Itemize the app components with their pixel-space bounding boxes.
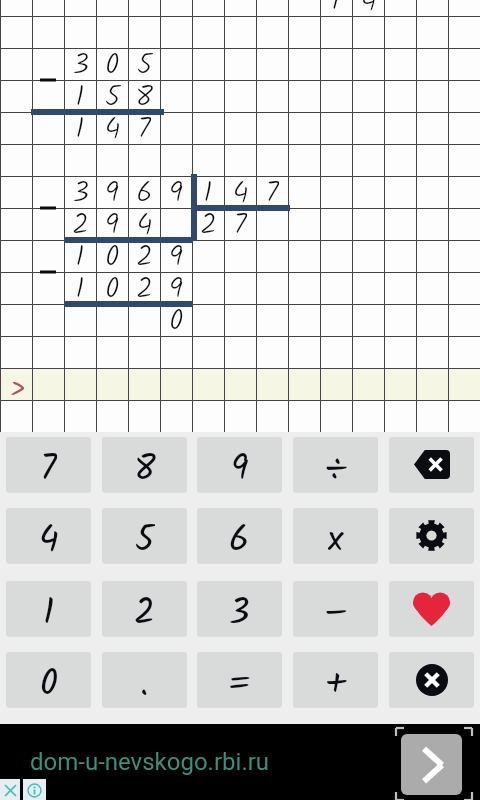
staticText: 7 <box>40 442 57 492</box>
button[interactable]: . <box>102 652 187 707</box>
staticText: 6 <box>229 513 250 563</box>
button[interactable]: Open advertisement <box>401 734 462 795</box>
staticText: . <box>140 657 149 707</box>
staticText: 4 <box>39 513 59 563</box>
button[interactable]: + <box>293 652 378 707</box>
button[interactable]: Advertisement info <box>23 779 46 800</box>
button[interactable]: 8 <box>102 437 187 492</box>
staticText: 7 <box>233 203 247 235</box>
staticText: 0 <box>105 235 120 267</box>
staticText: 4 <box>136 203 153 235</box>
staticText: 2 <box>200 203 217 235</box>
button[interactable]: 0 <box>6 652 91 707</box>
button[interactable]: 5 <box>102 508 187 563</box>
button[interactable]: Clear <box>389 652 474 707</box>
button[interactable]: dom-u-nevskogo.rbi.ru <box>0 724 480 800</box>
staticText: 1 <box>75 235 85 267</box>
button[interactable]: 2 <box>102 581 187 636</box>
button[interactable]: Favourite <box>389 581 474 636</box>
button[interactable]: 6 <box>197 508 282 563</box>
staticText: 2 <box>134 586 155 636</box>
staticText: 2 <box>136 235 153 267</box>
staticText: 1 <box>75 107 85 139</box>
staticText: 1 <box>331 0 341 11</box>
staticText: 5 <box>136 43 153 75</box>
staticText: 3 <box>72 171 89 203</box>
staticText: 8 <box>134 442 156 492</box>
staticText: ÷ <box>325 442 347 492</box>
staticText: 1 <box>75 75 85 107</box>
staticText: 3 <box>229 586 250 636</box>
staticText: x <box>328 513 344 563</box>
button[interactable]: Close ad <box>0 779 20 800</box>
staticText: − <box>325 586 347 636</box>
staticText: 5 <box>135 513 155 563</box>
staticText: 9 <box>105 171 119 203</box>
staticText: 0 <box>169 299 184 331</box>
staticText: = <box>228 657 251 707</box>
button[interactable]: x <box>293 508 378 563</box>
staticText: 2 <box>136 267 153 299</box>
staticText: 6 <box>136 171 153 203</box>
button[interactable]: Backspace <box>389 437 474 492</box>
button[interactable]: 4 <box>6 508 91 563</box>
button[interactable]: Settings <box>389 508 474 563</box>
button[interactable]: 7 <box>6 437 91 492</box>
button[interactable]: 3 <box>197 581 282 636</box>
staticText: 1 <box>75 267 85 299</box>
staticText: 1 <box>203 171 213 203</box>
button[interactable]: ÷ <box>293 437 378 492</box>
staticText: 4 <box>360 0 377 11</box>
staticText: + <box>325 657 347 707</box>
staticText: 3 <box>72 43 89 75</box>
staticText: 8 <box>135 75 153 107</box>
staticText: 7 <box>137 107 151 139</box>
staticText: dom-u-nevskogo.rbi.ru <box>30 748 270 776</box>
staticText: 9 <box>169 171 183 203</box>
staticText: 5 <box>104 75 121 107</box>
staticText: 0 <box>105 43 120 75</box>
staticText: 4 <box>232 171 249 203</box>
staticText: 9 <box>169 235 183 267</box>
staticText: 9 <box>231 442 249 492</box>
staticText: 2 <box>72 203 89 235</box>
button[interactable]: 1 <box>6 581 91 636</box>
button[interactable]: 9 <box>197 437 282 492</box>
button[interactable]: = <box>197 652 282 707</box>
staticText: 0 <box>105 267 120 299</box>
button[interactable]: − <box>293 581 378 636</box>
staticText: 9 <box>169 267 183 299</box>
staticText: 0 <box>40 657 58 707</box>
staticText: > <box>9 366 26 414</box>
staticText: 4 <box>104 107 121 139</box>
staticText: 7 <box>265 171 279 203</box>
staticText: 1 <box>43 586 55 636</box>
staticText: 9 <box>105 203 119 235</box>
